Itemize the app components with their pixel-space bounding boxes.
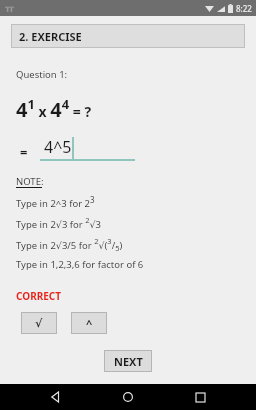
button[interactable]: 2. EXERCISE xyxy=(11,24,245,48)
staticText: 41 x 44 = ? xyxy=(16,95,92,122)
staticText: √ xyxy=(35,317,43,330)
button[interactable]: Exponent xyxy=(71,312,107,334)
staticText: 2. EXERCISE xyxy=(19,29,82,44)
button[interactable]: Home xyxy=(112,384,144,410)
staticText: CORRECT xyxy=(16,289,62,303)
button[interactable]: Back xyxy=(40,384,72,410)
button[interactable]: Square root xyxy=(21,312,57,334)
staticText: Type in 2^3 for 23 xyxy=(16,194,95,210)
staticText: 8:22 xyxy=(236,3,252,14)
button[interactable]: Recent apps xyxy=(184,384,216,410)
staticText: Type in 1,2,3,6 for factor of 6 xyxy=(16,258,144,271)
staticText: = xyxy=(20,143,28,161)
staticText: NEXT xyxy=(114,354,143,369)
button[interactable]: NEXT xyxy=(104,350,152,372)
button[interactable]: 4^5 xyxy=(40,136,135,161)
staticText: Type in 2√3 for 2√3 xyxy=(16,215,101,231)
staticText: NOTE: xyxy=(16,175,44,188)
staticText: 4^5 xyxy=(44,136,72,158)
staticText: Type in 2√3/5 for 2√(3/5) xyxy=(16,236,123,253)
staticText: ^ xyxy=(86,316,93,331)
staticText: Question 1: xyxy=(16,68,68,81)
